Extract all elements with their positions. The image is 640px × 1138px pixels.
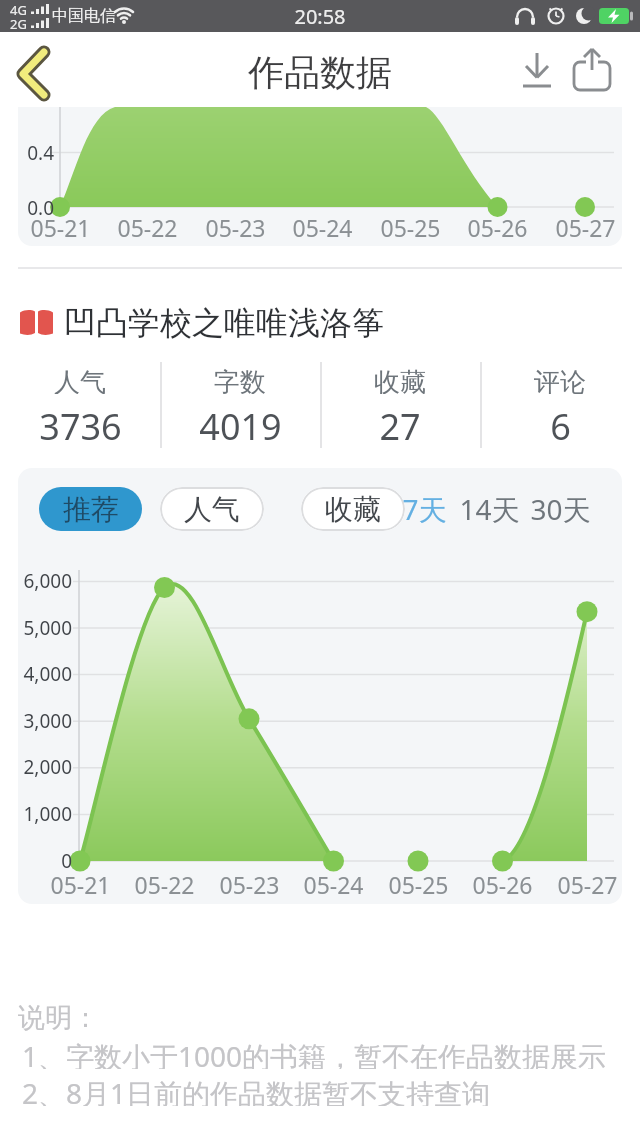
staticText: 0.4 [27, 140, 54, 164]
staticText: 0 [61, 848, 72, 874]
button[interactable]: 14天 [457, 489, 521, 529]
staticText: 27 [379, 402, 421, 446]
staticText: 收藏 [374, 366, 426, 394]
staticText: 人气 [184, 492, 240, 527]
staticText: 05-21 [30, 212, 91, 238]
staticText: 4,000 [23, 661, 72, 687]
staticText: 6 [550, 402, 571, 446]
staticText: 收藏 [325, 492, 381, 527]
staticText: 05-27 [557, 869, 618, 897]
button[interactable] [515, 48, 559, 96]
staticText: 0.0 [27, 195, 54, 219]
staticText: 作品数据 [248, 50, 392, 92]
staticText: 2G [10, 15, 27, 30]
staticText: 推荐 [63, 492, 119, 527]
button[interactable]: 30天 [528, 489, 592, 529]
staticText: 14天 [459, 490, 520, 528]
staticText: 30天 [530, 490, 591, 528]
staticText: 7天 [402, 490, 447, 528]
staticText: 05-22 [117, 212, 178, 238]
staticText: 3736 [39, 402, 122, 446]
staticText: 4019 [199, 402, 282, 446]
button[interactable] [6, 42, 62, 102]
staticText: 评论 [534, 366, 586, 394]
staticText: 4G [10, 1, 27, 16]
staticText: 05-23 [205, 212, 266, 238]
staticText: 05-23 [219, 869, 280, 897]
button[interactable]: 人气 [160, 487, 264, 531]
staticText: 3,000 [23, 708, 72, 734]
staticText: 05-26 [472, 869, 533, 897]
button[interactable] [570, 46, 618, 98]
staticText: 2、8月1日前的作品数据暂不支持查询 [22, 1074, 491, 1106]
staticText: 05-26 [467, 212, 528, 238]
staticText: 05-25 [388, 869, 449, 897]
staticText: 05-24 [292, 212, 353, 238]
staticText: 5,000 [23, 615, 72, 641]
button[interactable]: 收藏 [301, 487, 405, 531]
staticText: 人气 [54, 366, 106, 394]
button[interactable]: 推荐 [39, 487, 142, 531]
staticText: 6,000 [23, 568, 72, 594]
staticText: 05-25 [380, 212, 441, 238]
staticText: 05-21 [50, 869, 111, 897]
button[interactable] [18, 296, 622, 346]
staticText: 1、字数小于1000的书籍，暂不在作品数据展示 [22, 1037, 607, 1069]
staticText: 2,000 [23, 754, 72, 780]
staticText: 05-22 [134, 869, 195, 897]
staticText: 说明： [18, 1001, 99, 1031]
staticText: 字数 [214, 366, 266, 394]
staticText: 中国电信 [52, 6, 116, 26]
staticText: 20:58 [294, 3, 346, 30]
staticText: 05-24 [303, 869, 364, 897]
staticText: 05-27 [555, 212, 616, 238]
staticText: 1,000 [23, 801, 72, 827]
staticText: 凹凸学校之唯唯浅洛筝 [64, 303, 384, 343]
button[interactable]: 7天 [400, 489, 448, 529]
